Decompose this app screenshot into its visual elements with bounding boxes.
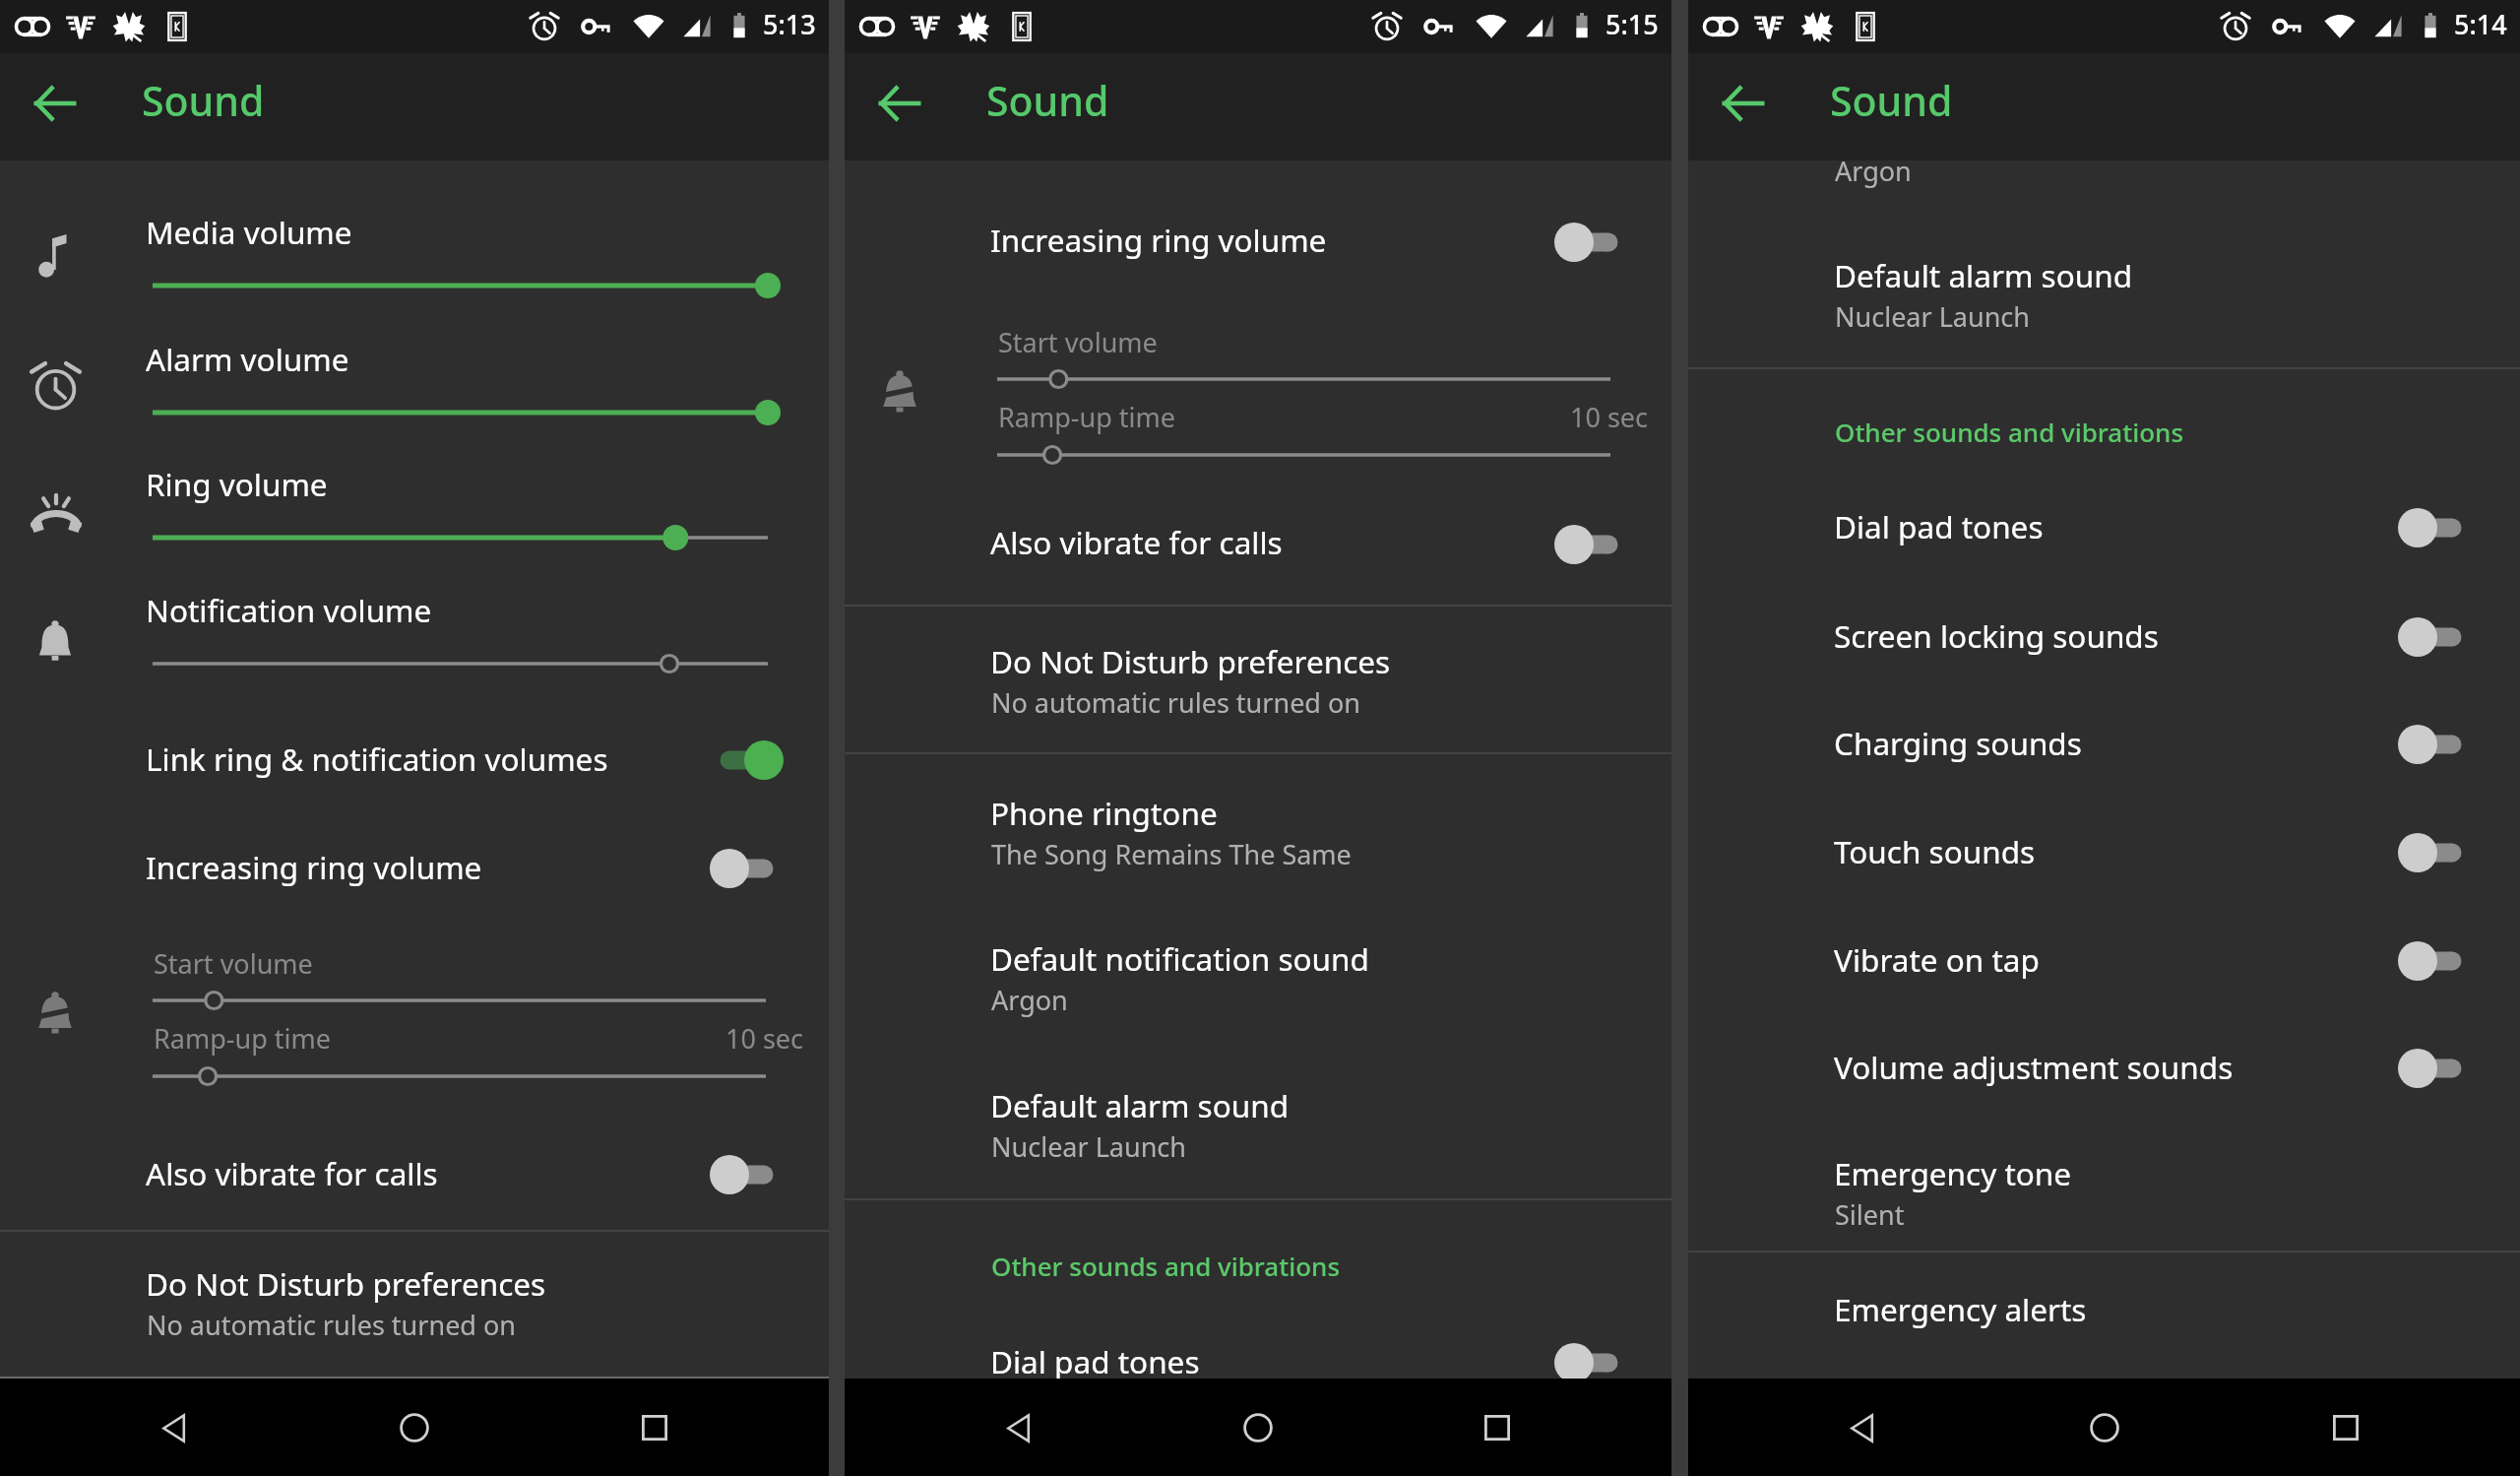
- staticText: Default alarm sound: [1834, 254, 2132, 296]
- staticText: 5:15: [1606, 6, 1659, 42]
- staticText: Charging sounds: [1834, 722, 2082, 764]
- staticText: Notification volume: [146, 589, 432, 631]
- staticText: Sound: [1830, 73, 1953, 128]
- button[interactable]: Increasing ring volume: [845, 192, 1671, 283]
- button[interactable]: Back: [1699, 59, 1788, 148]
- button[interactable]: Also vibrate for calls: [845, 494, 1671, 585]
- staticText: Default alarm sound: [990, 1084, 1289, 1126]
- staticText: 5:13: [763, 6, 816, 42]
- staticText: Dial pad tones: [1834, 505, 2044, 547]
- staticText: Sound: [986, 73, 1109, 128]
- button[interactable]: Do Not Disturb preferences: [845, 613, 1671, 751]
- button[interactable]: Link ring and notification volumes: [0, 709, 829, 800]
- staticText: Emergency tone: [1834, 1152, 2072, 1194]
- button[interactable]: Vibrate on tap: [1688, 910, 2520, 1000]
- staticText: Ramp-up time: [998, 399, 1175, 435]
- staticText: 5:14: [2454, 6, 2507, 42]
- staticText: Do Not Disturb preferences: [990, 640, 1391, 682]
- staticText: Sound: [142, 73, 265, 128]
- button[interactable]: Also vibrate for calls: [1534, 511, 1650, 578]
- button[interactable]: Back: [975, 1383, 1063, 1472]
- button[interactable]: Back: [130, 1383, 219, 1472]
- staticText: Media volume: [146, 211, 352, 253]
- button[interactable]: Back: [1818, 1383, 1907, 1472]
- button[interactable]: Touch sounds: [1688, 802, 2520, 892]
- button[interactable]: Alarm volume: [0, 298, 829, 424]
- staticText: Alarm volume: [146, 338, 349, 380]
- button[interactable]: Home: [2060, 1383, 2149, 1472]
- staticText: The Song Remains The Same: [991, 836, 1352, 872]
- staticText: Other sounds and vibrations: [991, 1249, 1341, 1283]
- staticText: Link ring & notification volumes: [146, 738, 608, 780]
- button[interactable]: Screen locking sounds: [2377, 604, 2493, 671]
- staticText: Phone ringtone: [990, 792, 1218, 834]
- button[interactable]: Dial pad tones: [2377, 494, 2493, 561]
- button[interactable]: Dial pad tones: [1534, 1329, 1650, 1396]
- staticText: Emergency alerts: [1834, 1288, 2087, 1330]
- button[interactable]: Media volume: [0, 172, 829, 298]
- staticText: Nuclear Launch: [1835, 298, 2030, 335]
- staticText: Ring volume: [146, 463, 328, 505]
- button[interactable]: Link ring & notification volumes: [689, 727, 805, 794]
- staticText: Increasing ring volume: [146, 846, 482, 888]
- staticText: Screen locking sounds: [1834, 614, 2159, 657]
- button[interactable]: Ring volume: [0, 424, 829, 550]
- button[interactable]: Recent apps: [1453, 1383, 1542, 1472]
- staticText: Volume adjustment sounds: [1834, 1046, 2234, 1088]
- staticText: Also vibrate for calls: [990, 521, 1283, 563]
- button[interactable]: Back: [855, 59, 944, 148]
- button[interactable]: Increasing ring volume: [689, 835, 805, 902]
- button[interactable]: Emergency alerts: [1688, 1258, 2520, 1367]
- button[interactable]: Increasing ring volume: [1534, 209, 1650, 276]
- staticText: No automatic rules turned on: [147, 1307, 517, 1343]
- staticText: Argon: [1835, 153, 1912, 189]
- button[interactable]: Touch sounds: [2377, 819, 2493, 886]
- button[interactable]: Increasing ring volume: [0, 817, 829, 908]
- button[interactable]: Vibrate on tap: [2377, 928, 2493, 995]
- button[interactable]: Screen locking sounds: [1688, 586, 2520, 676]
- button[interactable]: Also vibrate for calls: [0, 1123, 829, 1214]
- staticText: Default notification sound: [990, 937, 1369, 980]
- staticText: Argon: [991, 982, 1068, 1018]
- staticText: Start volume: [998, 324, 1158, 360]
- staticText: Ramp-up time: [154, 1020, 331, 1057]
- button[interactable]: Charging sounds: [1688, 693, 2520, 784]
- staticText: Do Not Disturb preferences: [146, 1262, 546, 1305]
- staticText: 10 sec: [508, 1020, 803, 1057]
- button[interactable]: Also vibrate for calls: [689, 1141, 805, 1208]
- button[interactable]: Do Not Disturb preferences: [0, 1236, 829, 1374]
- button[interactable]: Recent apps: [2301, 1383, 2390, 1472]
- button[interactable]: Dial pad tones: [845, 1310, 1671, 1379]
- button[interactable]: Default alarm sound: [1688, 227, 2520, 365]
- button[interactable]: Emergency tone: [1688, 1125, 2520, 1263]
- staticText: Other sounds and vibrations: [1835, 415, 2184, 449]
- staticText: Touch sounds: [1834, 830, 2036, 872]
- staticText: No automatic rules turned on: [991, 684, 1361, 721]
- staticText: 10 sec: [1353, 399, 1648, 435]
- button[interactable]: Volume adjustment sounds: [1688, 1017, 2520, 1108]
- button[interactable]: Dial pad tones: [1688, 477, 2520, 567]
- button[interactable]: Home: [1214, 1383, 1302, 1472]
- button[interactable]: Phone ringtone: [845, 765, 1671, 903]
- staticText: Also vibrate for calls: [146, 1152, 438, 1194]
- button[interactable]: Recent apps: [610, 1383, 699, 1472]
- button[interactable]: Notification volume: [0, 550, 829, 676]
- staticText: Nuclear Launch: [991, 1128, 1186, 1165]
- button[interactable]: Charging sounds: [2377, 711, 2493, 778]
- staticText: Start volume: [154, 945, 313, 982]
- button[interactable]: Default alarm sound: [845, 1058, 1671, 1195]
- staticText: Dial pad tones: [990, 1340, 1200, 1382]
- button[interactable]: Volume adjustment sounds: [2377, 1035, 2493, 1102]
- staticText: Increasing ring volume: [990, 219, 1327, 261]
- button[interactable]: Back: [11, 59, 99, 148]
- staticText: Vibrate on tap: [1834, 938, 2040, 981]
- button[interactable]: Default notification sound: [845, 911, 1671, 1049]
- staticText: Silent: [1835, 1196, 1905, 1233]
- button[interactable]: Home: [370, 1383, 459, 1472]
